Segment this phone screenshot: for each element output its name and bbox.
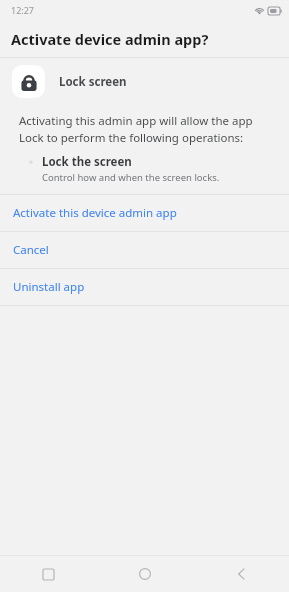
staticText: Lock the screen (42, 154, 132, 170)
staticText: Activate this device admin app (13, 205, 177, 221)
staticText: Activate device admin app? (11, 29, 209, 49)
button[interactable]: Activate this device admin app (0, 195, 289, 231)
button[interactable]: Uninstall app (0, 269, 289, 305)
staticText: 12:27 (11, 4, 35, 16)
staticText: Cancel (13, 242, 49, 258)
staticText: Control how and when the screen locks. (42, 171, 220, 184)
button[interactable]: Cancel (0, 232, 289, 268)
staticText: Uninstall app (13, 279, 85, 295)
staticText: Lock screen (59, 74, 127, 90)
staticText: Activating this admin app will allow the… (19, 113, 253, 145)
button[interactable]: Home (97, 556, 193, 592)
button[interactable]: Back (193, 556, 289, 592)
button[interactable]: Recent apps (0, 556, 97, 592)
